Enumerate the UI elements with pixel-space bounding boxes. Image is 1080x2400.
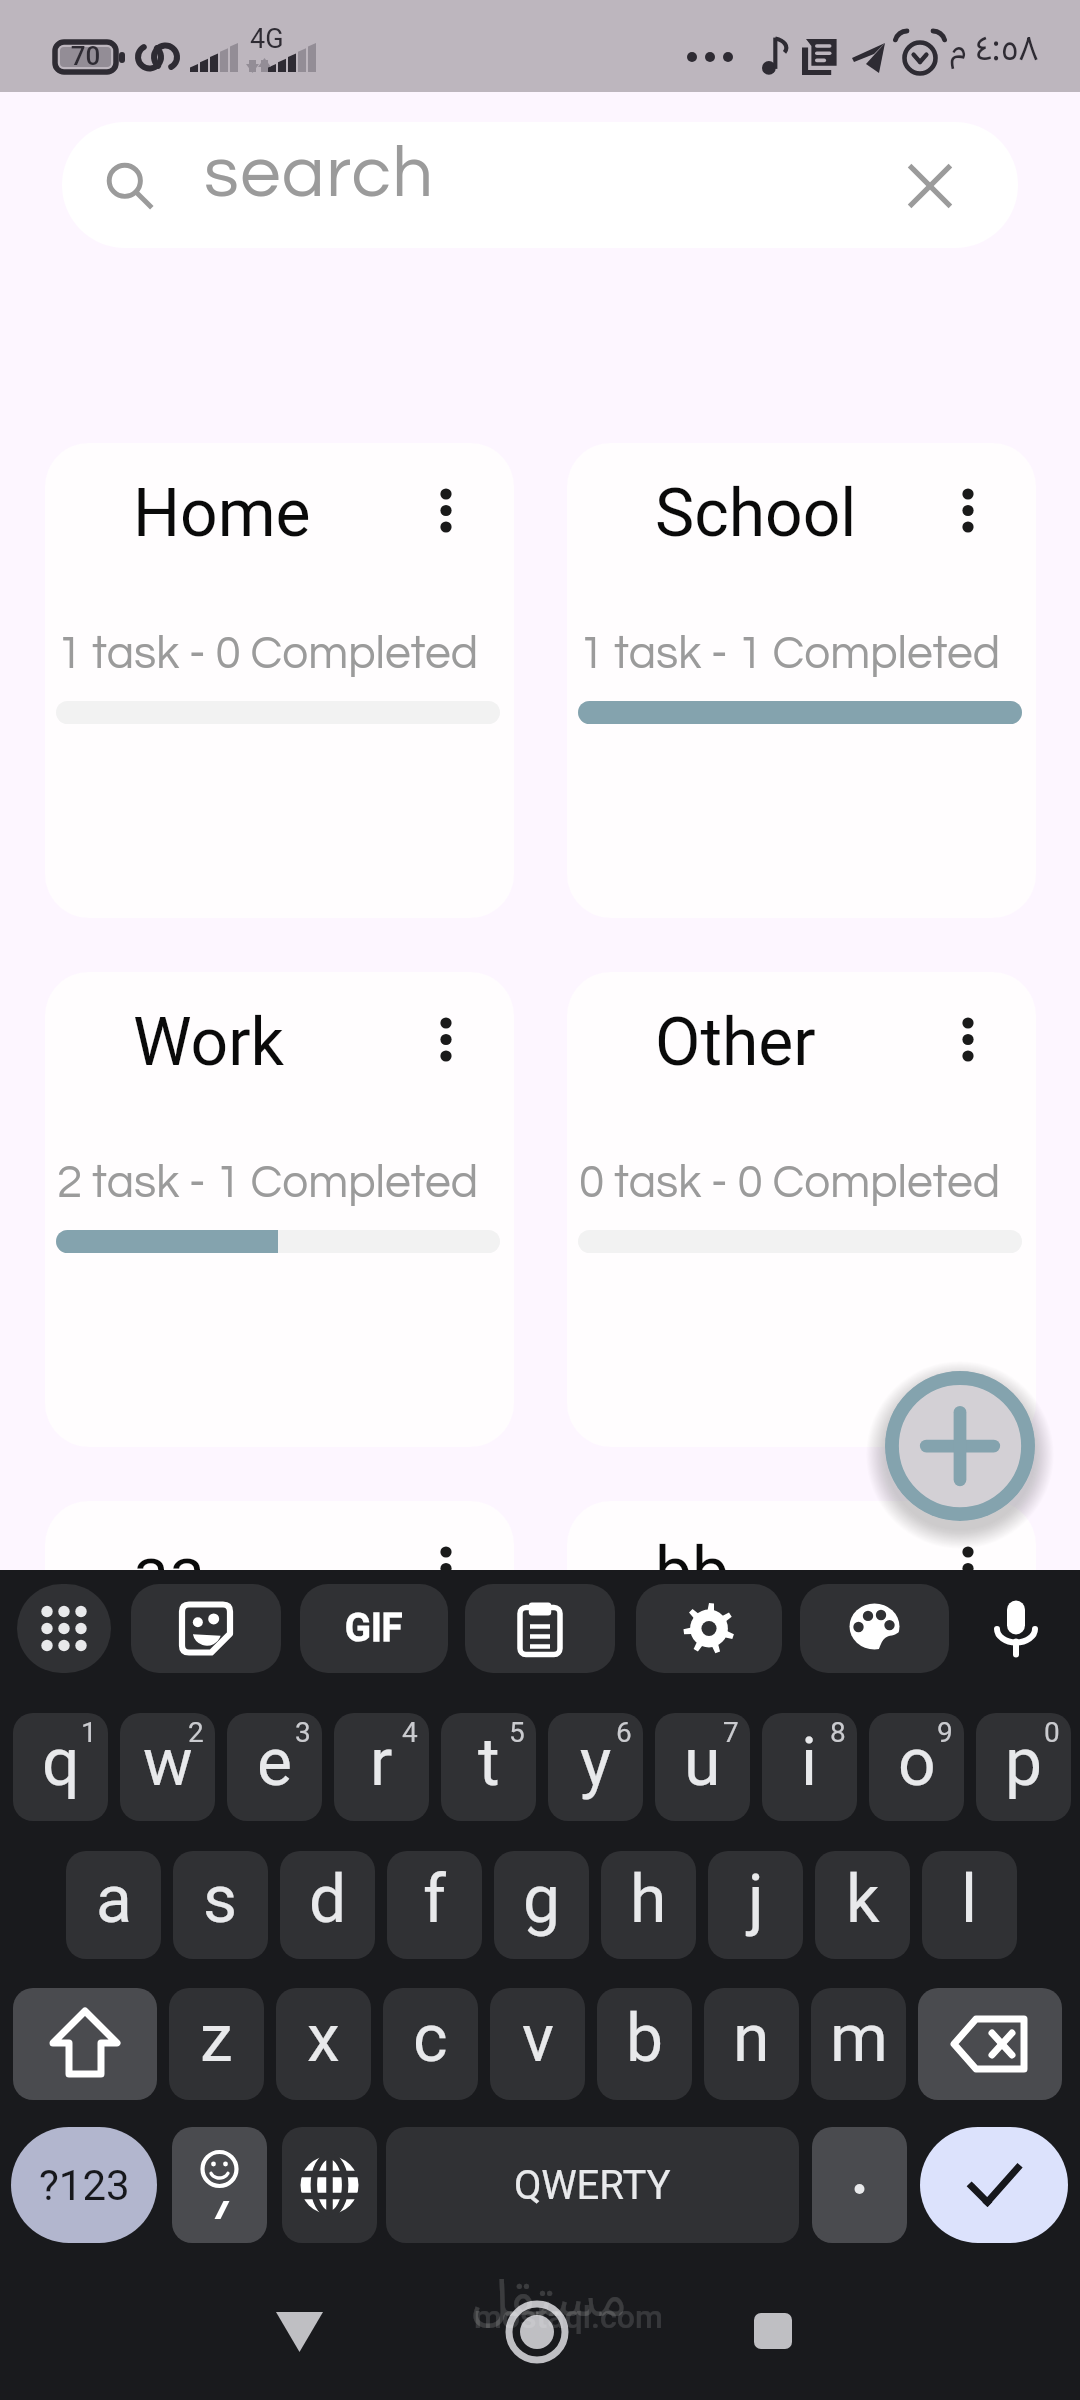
button[interactable]: y	[548, 1713, 643, 1821]
button[interactable]: ?123	[11, 2127, 157, 2243]
staticText: 7	[723, 1716, 739, 1749]
staticText: 4G	[250, 23, 284, 55]
button[interactable]: a	[66, 1851, 161, 1959]
staticText: 5	[509, 1716, 525, 1749]
staticText: 3	[295, 1716, 311, 1749]
staticText: y	[580, 1724, 612, 1801]
button[interactable]: Shift	[13, 1988, 157, 2100]
button[interactable]: i	[762, 1713, 857, 1821]
staticText: s	[203, 1861, 238, 1938]
staticText: l	[961, 1861, 978, 1938]
button[interactable]: u	[655, 1713, 750, 1821]
staticText: 4	[402, 1716, 418, 1749]
staticText: b	[626, 2000, 664, 2077]
staticText: e	[257, 1724, 292, 1801]
button[interactable]: Change language	[282, 2127, 377, 2243]
button[interactable]: GIF	[300, 1584, 448, 1673]
button[interactable]: x	[276, 1988, 371, 2100]
staticText: v	[522, 2000, 554, 2077]
staticText: QWERTY	[514, 2162, 671, 2209]
button[interactable]: m	[811, 1988, 906, 2100]
button[interactable]: School	[567, 443, 1036, 918]
button[interactable]: More options	[416, 467, 476, 527]
button[interactable]: t	[441, 1713, 536, 1821]
staticText: GIF	[345, 1606, 403, 1651]
staticText: 0 task - 0 Completed	[579, 1159, 1001, 1206]
staticText: 70	[62, 41, 109, 71]
button[interactable]: More options	[416, 996, 476, 1056]
staticText: k	[846, 1861, 880, 1938]
button[interactable]: More options	[416, 1525, 476, 1585]
button[interactable]: d	[280, 1851, 375, 1959]
button[interactable]: More options	[938, 467, 998, 527]
button[interactable]: l	[922, 1851, 1017, 1959]
staticText: x	[307, 2000, 340, 2077]
button[interactable]: Voice input	[985, 1584, 1047, 1673]
button[interactable]: Clear search	[900, 156, 960, 216]
button[interactable]: c	[383, 1988, 478, 2100]
staticText: u	[684, 1724, 721, 1801]
button[interactable]: Emoji	[172, 2127, 267, 2243]
button[interactable]: f	[387, 1851, 482, 1959]
button[interactable]: aa	[45, 1501, 514, 1976]
staticText: f	[423, 1861, 446, 1938]
staticText: bb	[655, 1533, 730, 1610]
button[interactable]: Home	[45, 443, 514, 918]
button[interactable]: Theme	[800, 1584, 949, 1673]
button[interactable]: e	[227, 1713, 322, 1821]
button[interactable]: g	[494, 1851, 589, 1959]
button[interactable]: s	[173, 1851, 268, 1959]
staticText: 1 task - 1 Completed	[579, 630, 1001, 677]
staticText: mostaql.com	[474, 2298, 663, 2336]
button[interactable]: Clipboard	[465, 1584, 615, 1673]
staticText: Home	[133, 475, 311, 552]
staticText: 1	[81, 1716, 97, 1749]
button[interactable]: Other	[567, 972, 1036, 1447]
staticText: 6	[616, 1716, 632, 1749]
button[interactable]: Period	[812, 2127, 907, 2243]
button[interactable]: n	[704, 1988, 799, 2100]
staticText: search	[204, 137, 435, 211]
button[interactable]: w	[120, 1713, 215, 1821]
button[interactable]: QWERTY	[386, 2127, 799, 2243]
button[interactable]: Recent apps	[723, 2290, 823, 2380]
staticText: 0	[1044, 1716, 1060, 1749]
staticText: 9	[937, 1716, 953, 1749]
button[interactable]: q	[13, 1713, 108, 1821]
button[interactable]: Stickers	[131, 1584, 281, 1673]
button[interactable]: Add list	[885, 1371, 1035, 1521]
staticText: a	[96, 1861, 132, 1938]
staticText: i	[801, 1724, 818, 1801]
button[interactable]: Back	[250, 2290, 360, 2380]
staticText: aa	[133, 1533, 205, 1610]
button[interactable]: bb	[567, 1501, 1036, 1976]
button[interactable]: Home	[487, 2290, 587, 2380]
button[interactable]: z	[169, 1988, 264, 2100]
button[interactable]: More options	[938, 1525, 998, 1585]
button[interactable]: Enter	[920, 2127, 1068, 2243]
button[interactable]: Backspace	[918, 1988, 1062, 2100]
button[interactable]: j	[708, 1851, 803, 1959]
staticText: t	[478, 1724, 500, 1801]
button[interactable]: search	[62, 122, 1018, 248]
button[interactable]: h	[601, 1851, 696, 1959]
button[interactable]: k	[815, 1851, 910, 1959]
staticText: 2 task - 1 Completed	[57, 1159, 479, 1206]
button[interactable]: o	[869, 1713, 964, 1821]
button[interactable]: v	[490, 1988, 585, 2100]
staticText: 1 task - 0 Completed	[57, 630, 479, 677]
button[interactable]: r	[334, 1713, 429, 1821]
staticText: q	[42, 1724, 80, 1801]
button[interactable]: Work	[45, 972, 514, 1447]
button[interactable]: p	[976, 1713, 1071, 1821]
staticText: z	[200, 2000, 233, 2077]
button[interactable]: b	[597, 1988, 692, 2100]
button[interactable]: More options	[938, 996, 998, 1056]
button[interactable]: Switch keyboard	[17, 1584, 111, 1673]
staticText: School	[655, 475, 857, 552]
staticText: Other	[655, 1004, 816, 1081]
staticText: d	[309, 1861, 347, 1938]
staticText: ?123	[39, 2161, 130, 2210]
button[interactable]: Settings	[636, 1584, 782, 1673]
staticText: o	[898, 1724, 936, 1801]
